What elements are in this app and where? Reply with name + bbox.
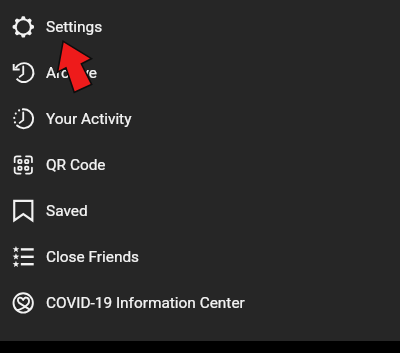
staticText: Archive [46, 64, 97, 82]
button[interactable]: COVID-19 Information Center [0, 279, 400, 325]
button[interactable]: Settings [0, 3, 400, 49]
staticText: Your Activity [46, 110, 132, 128]
button[interactable]: Saved [0, 187, 400, 233]
staticText: COVID-19 Information Center [46, 294, 245, 312]
staticText: QR Code [46, 156, 106, 174]
staticText: Close Friends [46, 248, 140, 266]
staticText: Saved [46, 202, 88, 220]
button[interactable]: Close Friends [0, 233, 400, 279]
button[interactable]: Archive [0, 49, 400, 95]
staticText: Settings [46, 18, 103, 36]
button[interactable]: Your Activity [0, 95, 400, 141]
button[interactable]: QR Code [0, 141, 400, 187]
